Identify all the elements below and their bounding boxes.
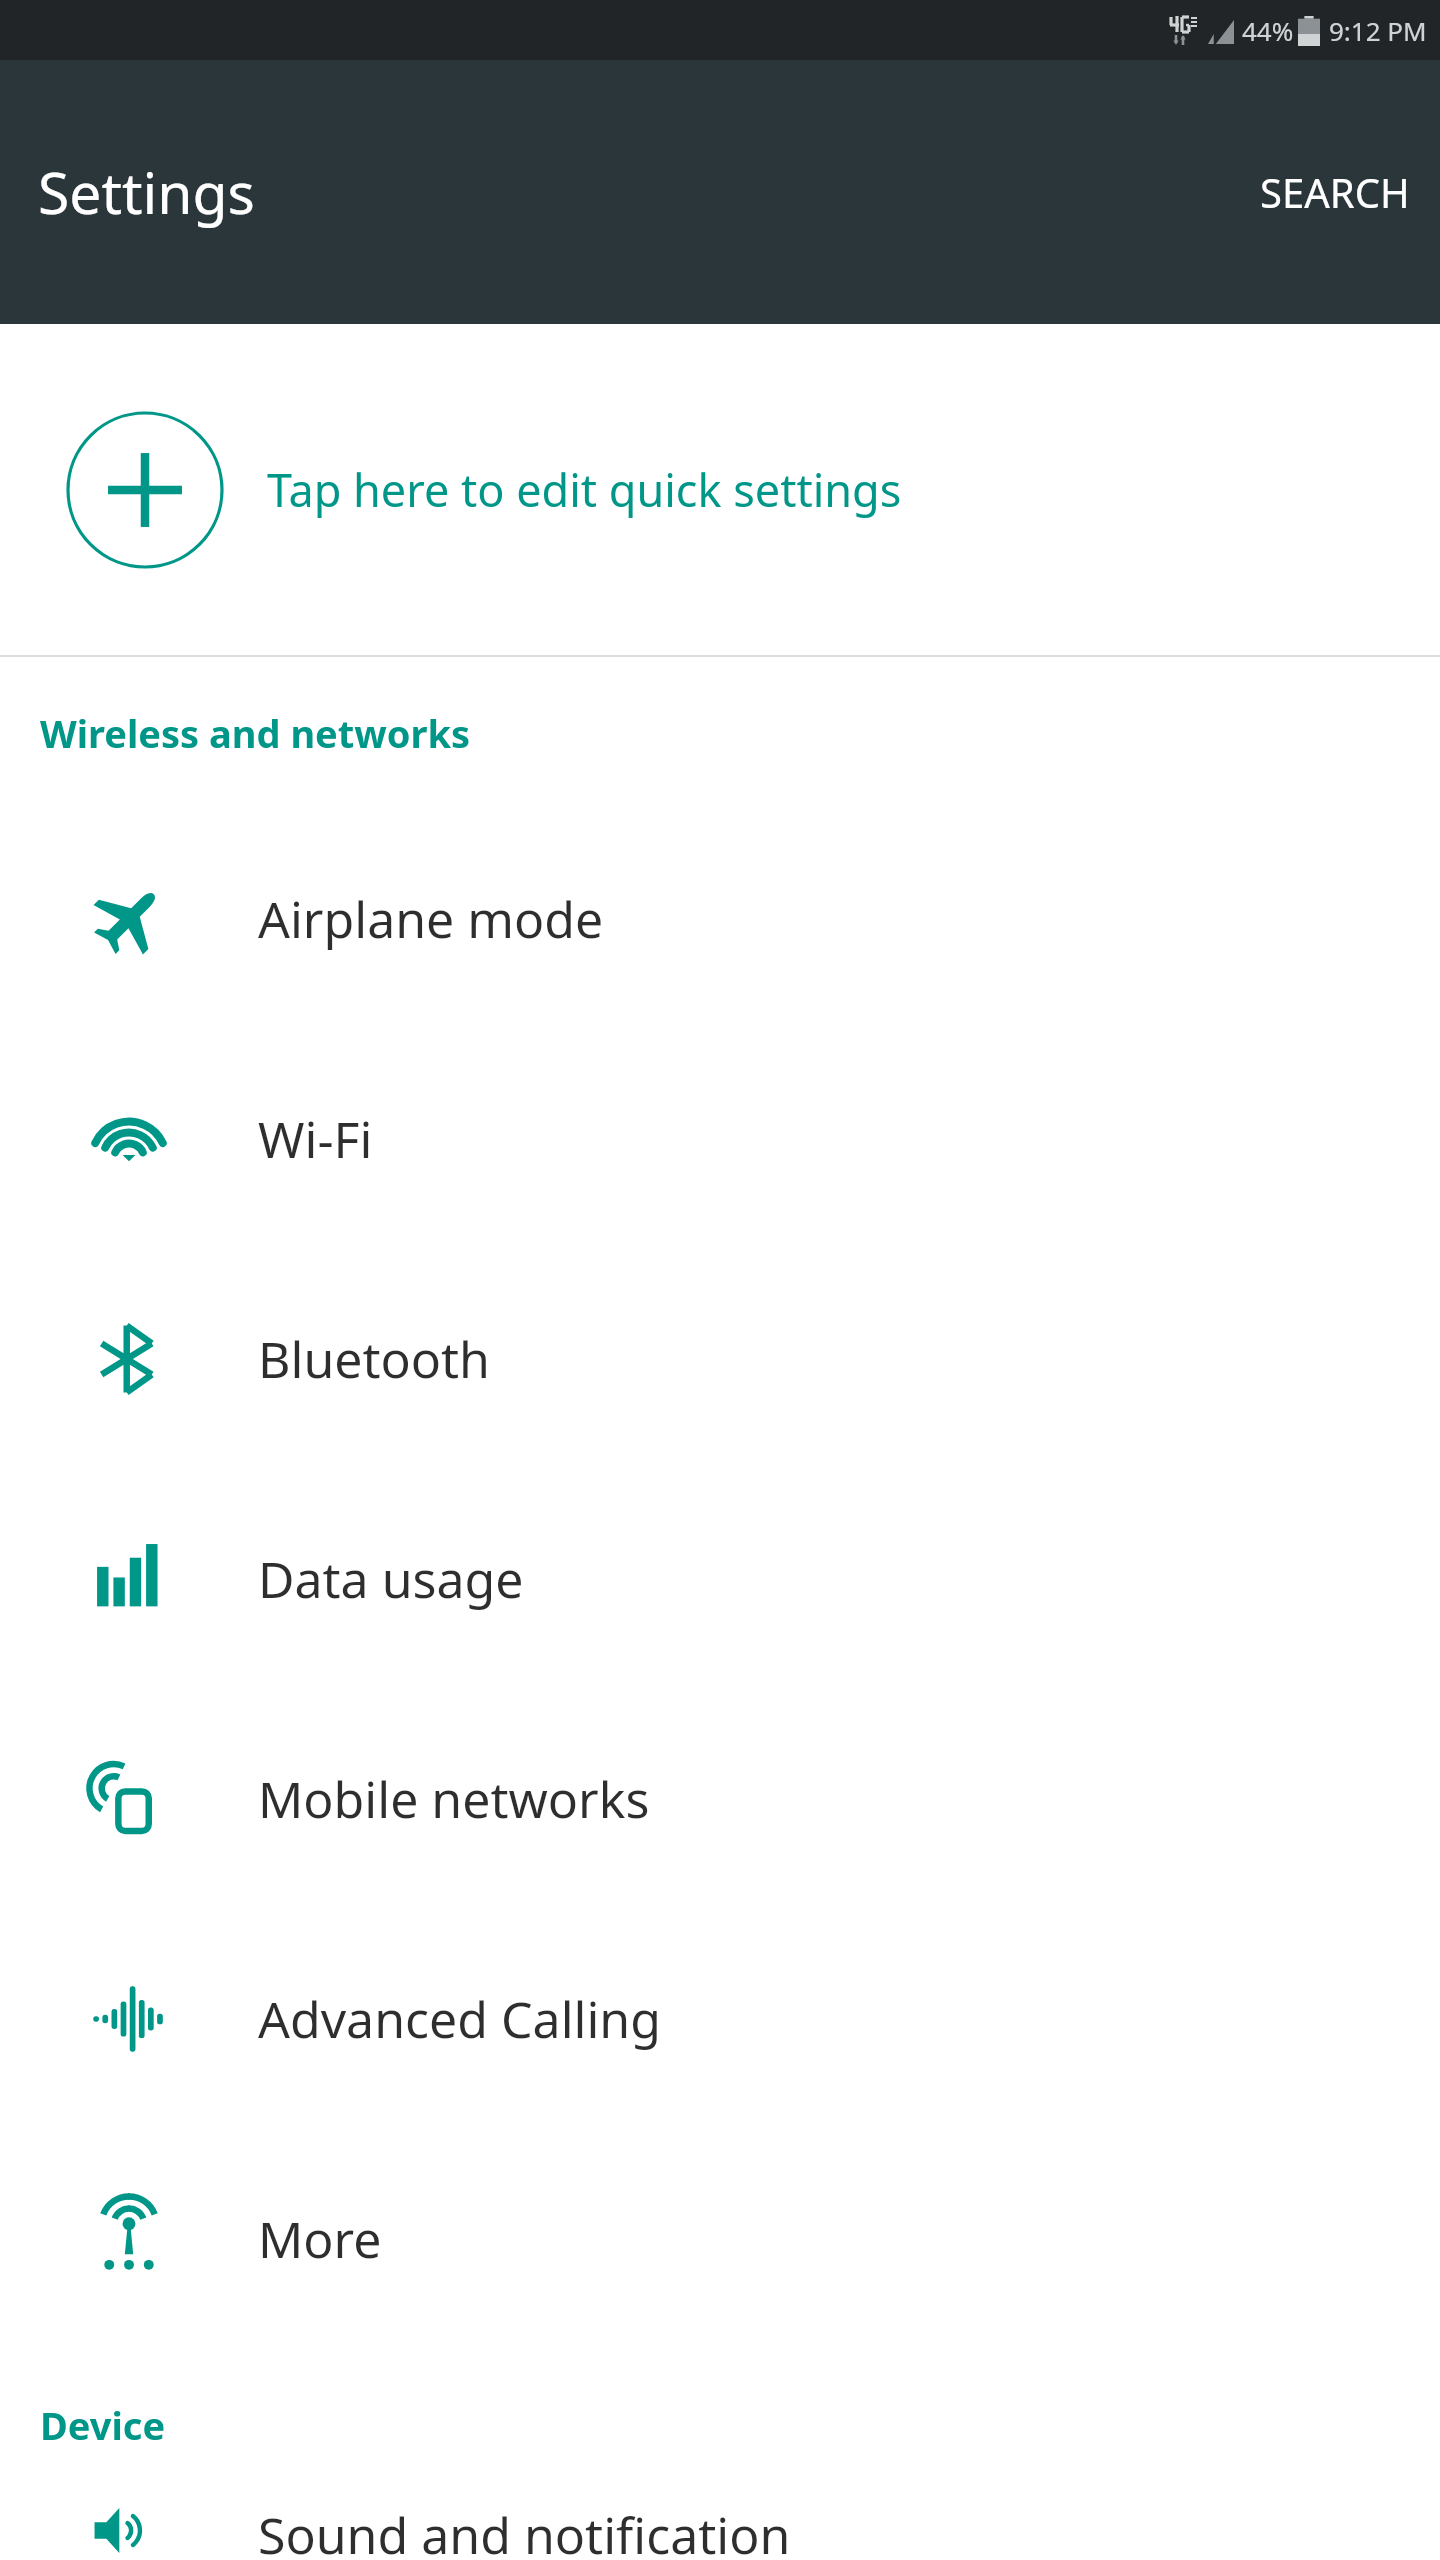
staticText: 44% [1242, 13, 1294, 48]
staticText: SEARCH [1260, 165, 1410, 219]
button[interactable]: Data usage [0, 1469, 1440, 1689]
staticText: Airplane mode [258, 885, 604, 953]
button[interactable]: Tap here to edit quick settings [0, 324, 1440, 655]
staticText: Wireless and networks [40, 707, 471, 759]
button[interactable]: Bluetooth [0, 1249, 1440, 1469]
staticText: Tap here to edit quick settings [267, 459, 902, 520]
button[interactable]: Advanced Calling [0, 1909, 1440, 2129]
staticText: Advanced Calling [258, 1985, 661, 2053]
button[interactable]: Airplane mode [0, 809, 1440, 1029]
staticText: Sound and notification [258, 2501, 791, 2560]
button[interactable]: More [0, 2129, 1440, 2349]
button[interactable]: Wi-Fi [0, 1029, 1440, 1249]
staticText: Data usage [258, 1545, 524, 1613]
staticText: More [258, 2205, 382, 2273]
button[interactable]: SEARCH [1230, 143, 1440, 241]
staticText: 9:12 PM [1329, 13, 1427, 48]
staticText: Mobile networks [258, 1765, 650, 1833]
staticText: Device [40, 2399, 166, 2451]
button[interactable]: Sound and notification [0, 2501, 1440, 2560]
staticText: Bluetooth [258, 1325, 490, 1393]
button[interactable]: Mobile networks [0, 1689, 1440, 1909]
staticText: Wi-Fi [258, 1105, 373, 1173]
staticText: Settings [38, 153, 255, 231]
